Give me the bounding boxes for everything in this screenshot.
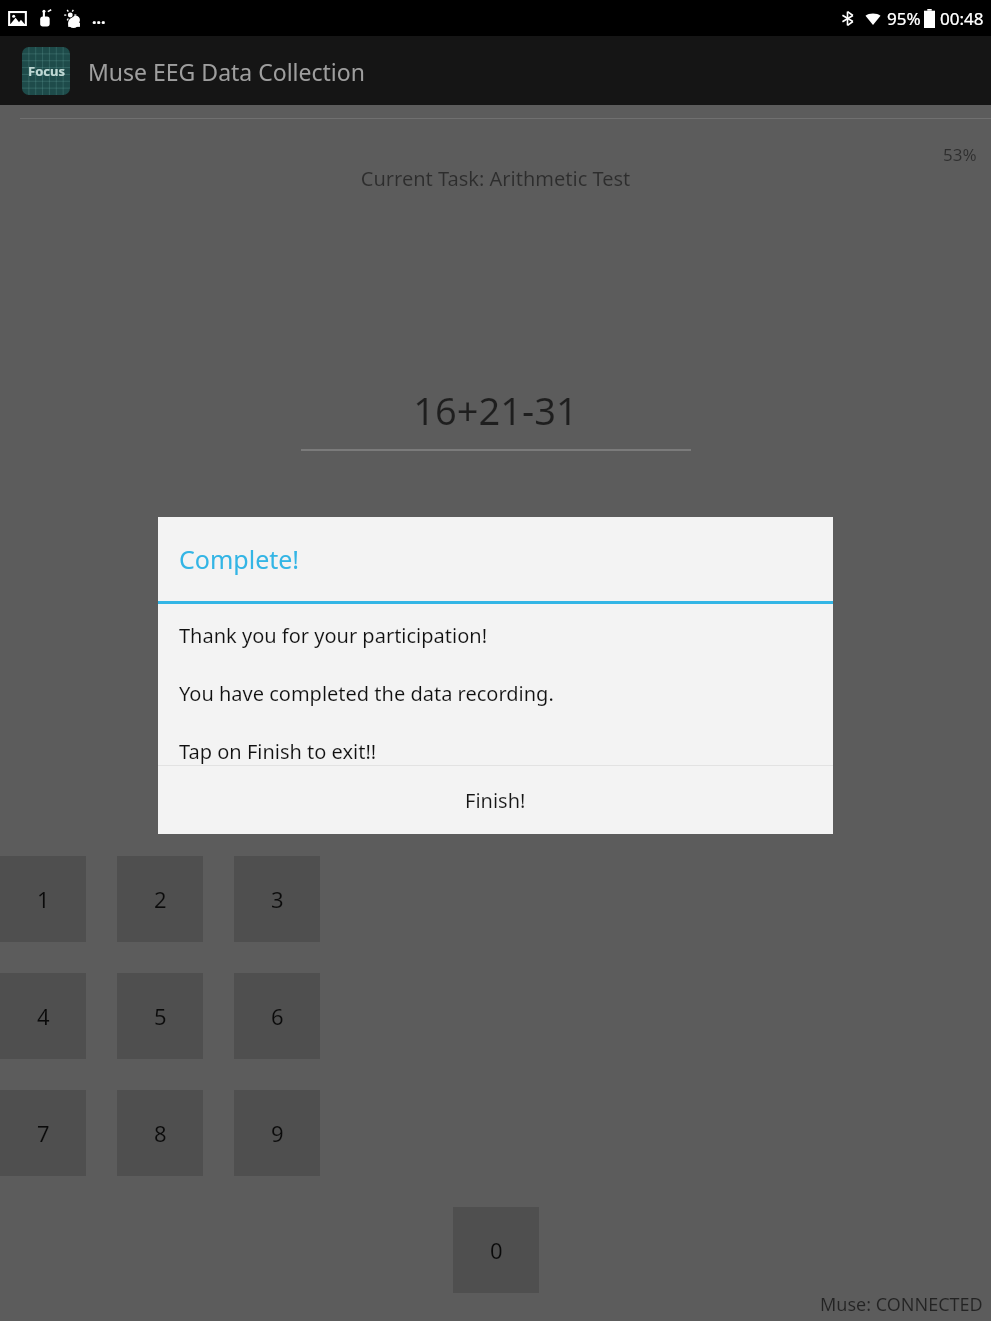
staticText: Focus	[28, 62, 65, 80]
other: Bluetooth	[840, 11, 855, 26]
staticText: 00:48	[940, 7, 984, 30]
button[interactable]: 1	[0, 856, 86, 942]
staticText: 4	[37, 1001, 50, 1031]
staticText: 53%	[943, 143, 977, 166]
staticText: 2	[154, 884, 167, 914]
button[interactable]: App icon	[22, 47, 70, 95]
button[interactable]: Finish!	[158, 766, 833, 834]
staticText: 1	[37, 884, 50, 914]
staticText: 8	[154, 1118, 167, 1148]
staticText: Complete!	[179, 542, 300, 576]
staticText: Tap on Finish to exit!!	[179, 738, 377, 765]
button[interactable]: 3	[234, 856, 320, 942]
staticText: You have completed the data recording.	[179, 680, 554, 707]
staticText: 0	[490, 1235, 503, 1265]
other: Touch	[36, 9, 55, 28]
staticText: Finish!	[465, 787, 526, 814]
staticText: 6	[271, 1001, 284, 1031]
button[interactable]: 2	[117, 856, 203, 942]
button[interactable]: 6	[234, 973, 320, 1059]
staticText: Muse: CONNECTED	[820, 1292, 983, 1317]
staticText: 3	[271, 884, 284, 914]
button[interactable]: 5	[117, 973, 203, 1059]
staticText: 7	[37, 1118, 50, 1148]
staticText: 9	[271, 1118, 284, 1148]
staticText: Thank you for your participation!	[179, 622, 488, 649]
staticText: 5	[154, 1001, 167, 1031]
staticText: 95%	[887, 7, 921, 30]
other: Battery	[924, 9, 935, 28]
button[interactable]: 4	[0, 973, 86, 1059]
other: Wi-Fi	[865, 11, 881, 27]
button[interactable]: 9	[234, 1090, 320, 1176]
staticText: Muse EEG Data Collection	[88, 56, 365, 87]
staticText: ...	[92, 7, 106, 29]
other: Weather	[64, 9, 83, 28]
button[interactable]: 0	[453, 1207, 539, 1293]
button[interactable]: 7	[0, 1090, 86, 1176]
staticText: 16+21-31	[0, 384, 991, 436]
button[interactable]: 8	[117, 1090, 203, 1176]
staticText: Current Task: Arithmetic Test	[0, 165, 991, 192]
other: Screenshot	[8, 9, 27, 28]
